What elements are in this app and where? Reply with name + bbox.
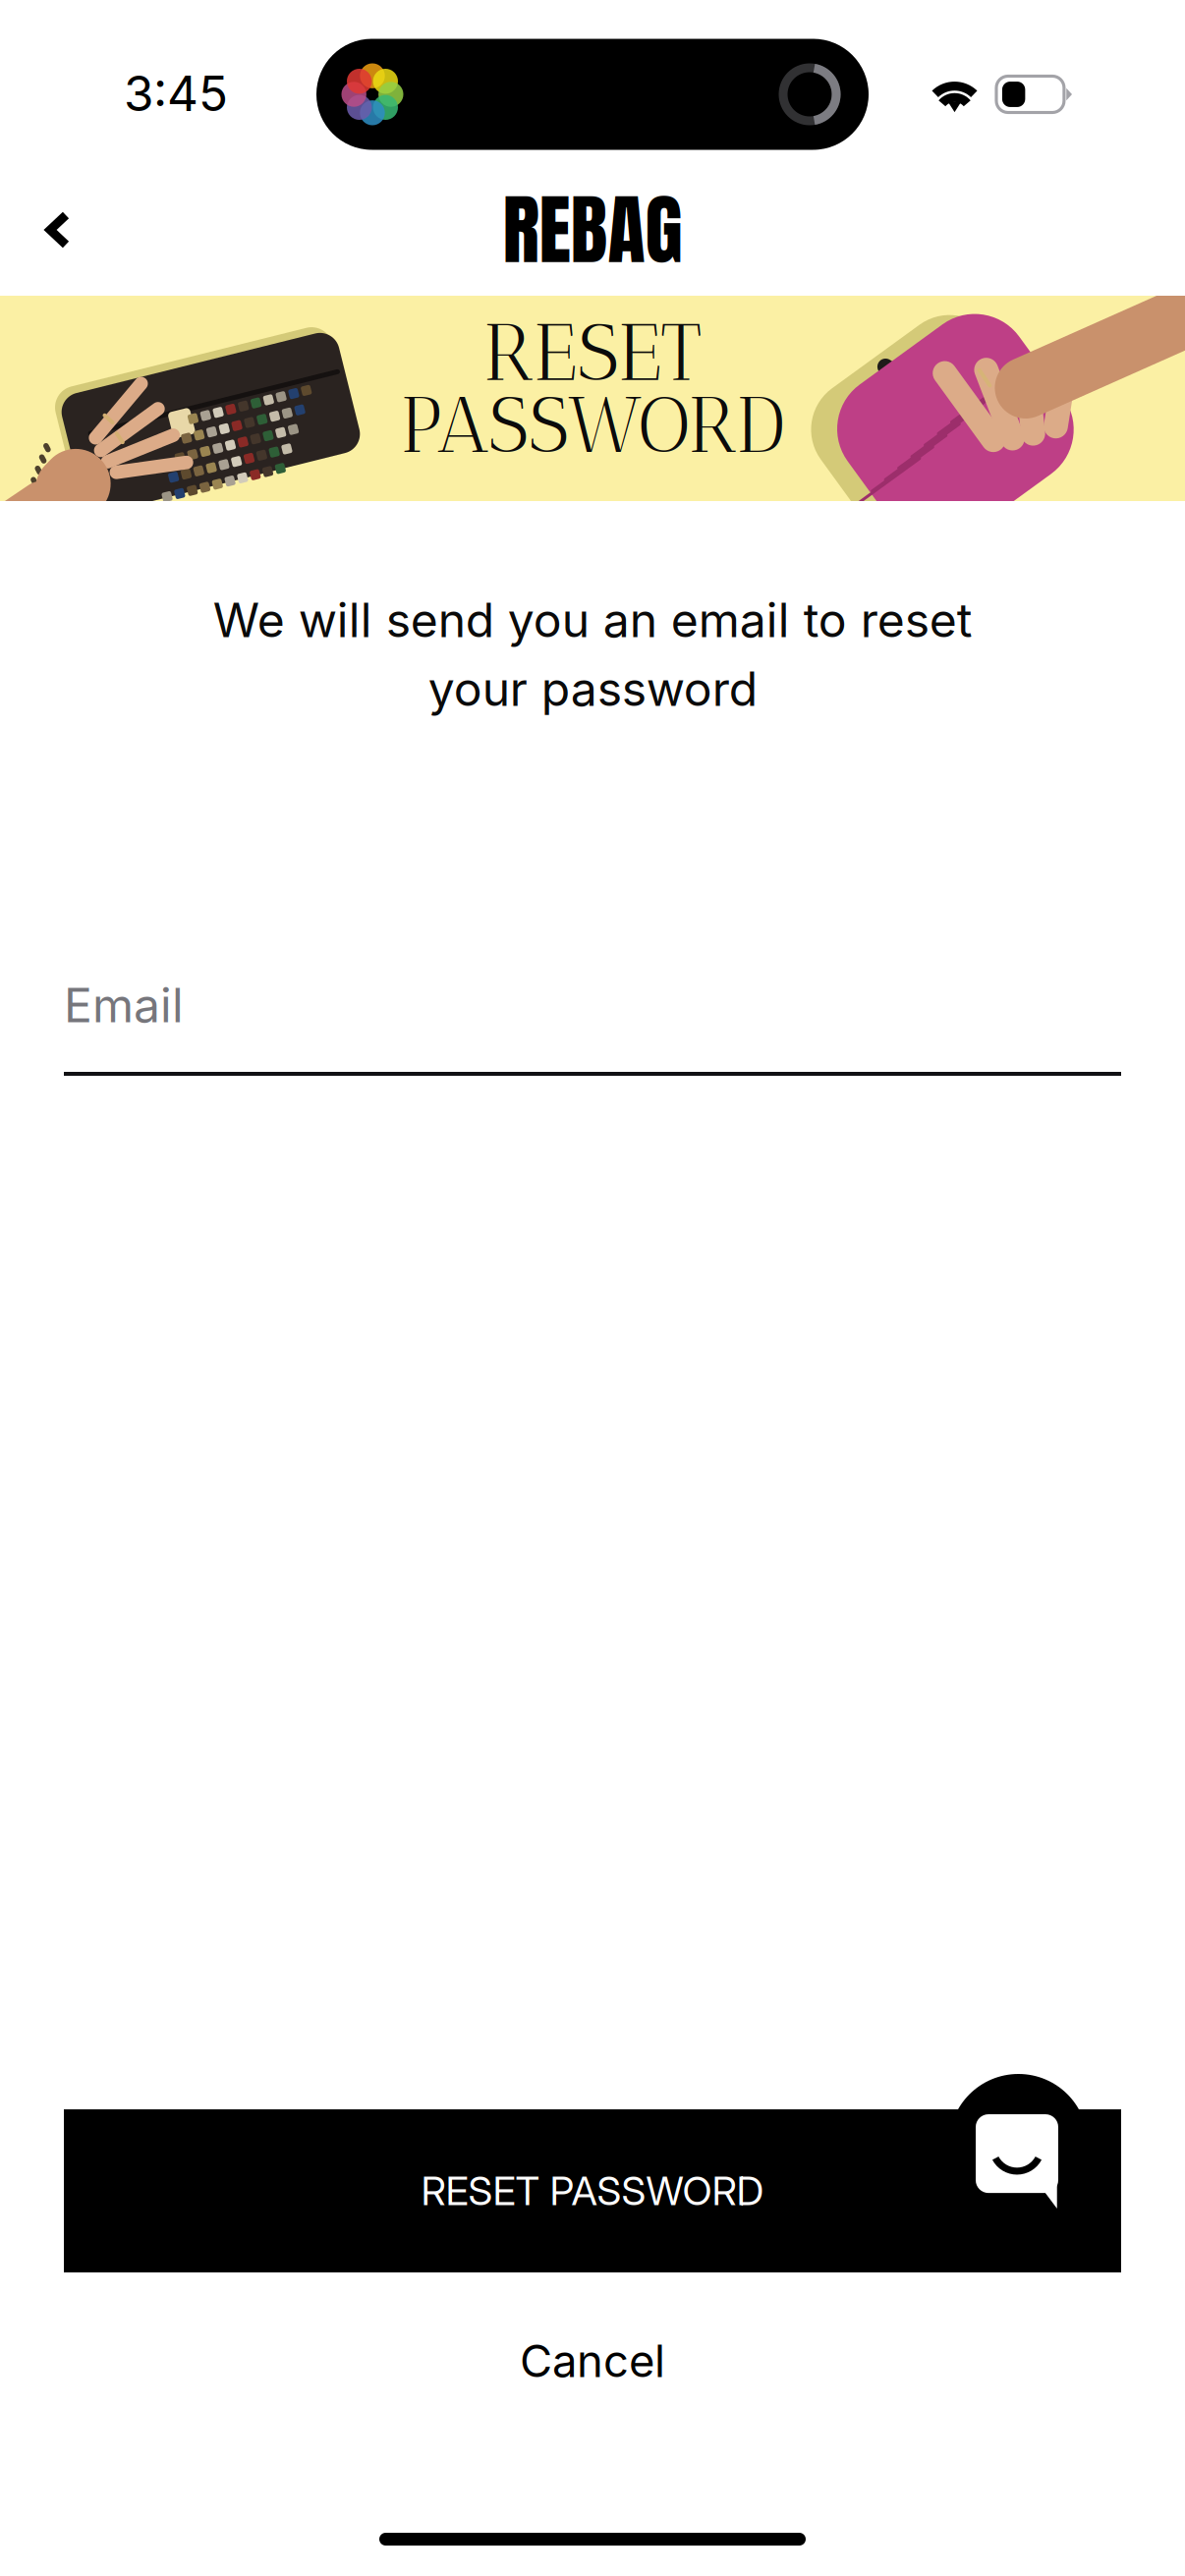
staticText: We will send you an email to reset your … [213, 591, 972, 717]
staticText: 3:45 [124, 64, 228, 123]
staticText: Email [64, 977, 184, 1034]
button[interactable]: RESET PASSWORD [64, 2109, 1121, 2272]
staticText: RESET PASSWORD [421, 2167, 764, 2215]
button[interactable]: Chat with support [976, 2114, 1058, 2209]
staticText: Cancel [520, 2334, 665, 2388]
button[interactable]: Back [0, 189, 109, 296]
staticText: PASSWORD [400, 379, 785, 471]
button[interactable]: Cancel [0, 2317, 1185, 2405]
staticText: RESET [483, 305, 702, 400]
staticText: REBAG [503, 171, 682, 288]
